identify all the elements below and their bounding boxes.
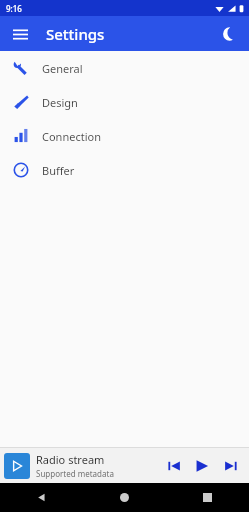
button[interactable]: Open navigation menu (5, 19, 35, 49)
button[interactable]: Back (0, 483, 83, 512)
button[interactable]: Design (0, 85, 249, 119)
button[interactable]: Previous (161, 448, 187, 483)
staticText: Design (42, 95, 78, 110)
button[interactable]: General (0, 51, 249, 85)
button[interactable]: Home (83, 483, 166, 512)
staticText: Connection (42, 129, 101, 144)
staticText: 9:16 (6, 3, 22, 14)
button[interactable]: Connection (0, 119, 249, 153)
button[interactable]: Toggle dark mode (214, 19, 244, 49)
button[interactable]: Recent apps (166, 483, 249, 512)
staticText: Settings (46, 24, 105, 44)
staticText: Radio stream (36, 452, 105, 467)
button[interactable]: Play (187, 448, 217, 483)
staticText: Supported metadata (36, 468, 114, 479)
staticText: General (42, 61, 83, 76)
button[interactable]: Buffer (0, 153, 249, 187)
button[interactable]: Next (217, 448, 245, 483)
button[interactable]: Radio stream (0, 448, 249, 483)
staticText: Buffer (42, 163, 75, 178)
